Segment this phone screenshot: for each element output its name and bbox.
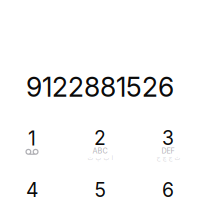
staticText: 4 [26, 178, 38, 200]
staticText: ث ج چ ح [156, 154, 180, 161]
staticText: 5 [94, 178, 105, 200]
staticText: ا ب پ ت [87, 154, 113, 161]
button[interactable]: 2 [72, 130, 128, 160]
staticText: 2 [94, 126, 106, 150]
staticText: 9122881526 [26, 71, 174, 103]
staticText: 6 [162, 178, 174, 200]
button[interactable]: 6 [140, 182, 196, 200]
button[interactable]: 5 [72, 182, 128, 200]
staticText: ABC [92, 147, 107, 155]
staticText: 1 [28, 127, 36, 150]
button[interactable]: 4 [4, 182, 60, 200]
button[interactable]: 3 [140, 130, 196, 160]
staticText: DEF [161, 147, 174, 155]
staticText: 3 [162, 126, 174, 150]
button[interactable]: 1 [4, 130, 60, 160]
